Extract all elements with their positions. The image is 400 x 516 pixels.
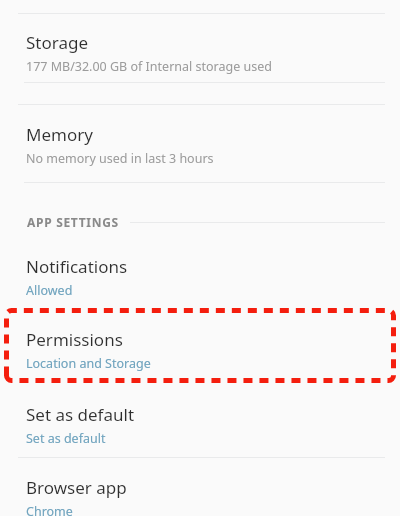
staticText: Location and Storage xyxy=(26,355,151,372)
staticText: Chrome xyxy=(26,503,73,516)
button[interactable]: Memory xyxy=(0,105,400,182)
button[interactable]: Browser app xyxy=(0,458,400,516)
staticText: Set as default xyxy=(26,403,135,426)
staticText: Set as default xyxy=(26,430,106,447)
staticText: Permissions xyxy=(26,328,123,351)
button[interactable]: Set as default xyxy=(0,392,400,456)
staticText: APP SETTINGS xyxy=(27,214,119,230)
other: Permissions highlight annotation xyxy=(0,0,400,516)
staticText: Notifications xyxy=(26,255,128,278)
staticText: Storage xyxy=(26,31,89,54)
staticText: Memory xyxy=(26,123,93,146)
staticText: Allowed xyxy=(26,282,73,299)
button[interactable]: Storage xyxy=(0,14,400,82)
staticText: 177 MB/32.00 GB of Internal storage used xyxy=(26,58,272,75)
staticText: No memory used in last 3 hours xyxy=(26,150,214,167)
button[interactable]: Permissions xyxy=(0,310,400,381)
staticText: Browser app xyxy=(26,476,127,499)
button[interactable]: Notifications xyxy=(0,244,400,306)
